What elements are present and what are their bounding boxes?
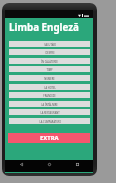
staticText: ÎN CĂLĂTORIE xyxy=(41,60,58,63)
staticText: NUMERE xyxy=(44,77,55,80)
staticText: Limba Engleză xyxy=(9,21,79,34)
button[interactable]: EXTRA xyxy=(8,133,90,143)
button[interactable]: LA ÎNTÂLNIRE xyxy=(9,101,90,107)
staticText: DESPRE xyxy=(45,51,55,54)
button[interactable]: NUMERE xyxy=(9,75,90,81)
button[interactable]: Back xyxy=(16,159,27,170)
button[interactable]: ÎN CĂLĂTORIE xyxy=(9,58,90,64)
staticText: LA HOTEL xyxy=(44,86,56,89)
button[interactable]: LA CUMPĂRĂTURI xyxy=(9,118,90,124)
button[interactable]: TIMP xyxy=(9,66,90,72)
staticText: LA ÎNTÂLNIRE xyxy=(41,103,58,106)
button[interactable]: SALUTĂRI xyxy=(9,41,90,47)
staticText: FRANCEZE xyxy=(43,94,56,97)
staticText: LA CUMPĂRĂTURI xyxy=(39,120,61,123)
button[interactable]: LA RESTAURANT xyxy=(9,109,90,115)
staticText: TIMP xyxy=(46,68,53,71)
staticText: EXTRA xyxy=(40,134,59,142)
staticText: SALUTĂRI xyxy=(44,43,56,46)
button[interactable]: LA HOTEL xyxy=(9,84,90,90)
button[interactable]: Recents xyxy=(72,159,83,170)
button[interactable]: Home xyxy=(44,159,55,170)
button[interactable]: FRANCEZE xyxy=(9,92,90,98)
button[interactable]: DESPRE xyxy=(9,49,90,55)
staticText: LA RESTAURANT xyxy=(40,111,60,114)
